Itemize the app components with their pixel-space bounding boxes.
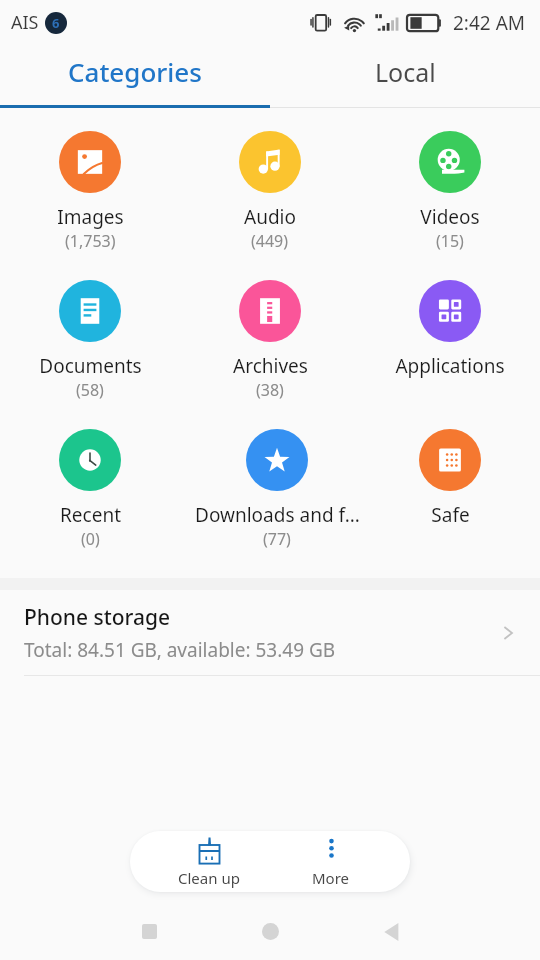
staticText: (58) — [76, 379, 104, 401]
staticText: 6 — [52, 14, 60, 32]
button[interactable]: Archives — [180, 267, 360, 416]
staticText: Recent — [60, 502, 121, 528]
staticText: Audio — [244, 204, 296, 230]
staticText: Downloads and f... — [195, 502, 360, 528]
staticText: Categories — [68, 54, 202, 89]
staticText: Safe — [431, 502, 470, 528]
button[interactable]: More options — [270, 831, 392, 892]
other: Open phone storage — [498, 623, 518, 643]
staticText: 2:42 AM — [453, 10, 526, 36]
button[interactable]: Safe — [360, 416, 540, 565]
staticText: (1,753) — [65, 230, 116, 252]
staticText: AIS — [11, 10, 39, 35]
staticText: Documents — [39, 353, 142, 379]
staticText: (38) — [256, 379, 284, 401]
button[interactable]: Recent — [0, 416, 180, 565]
staticText: Local — [375, 55, 436, 89]
staticText: Phone storage — [24, 603, 171, 632]
staticText: Applications — [395, 353, 505, 379]
button[interactable]: Home — [210, 903, 331, 960]
staticText: (0) — [81, 528, 100, 550]
button[interactable]: Audio — [180, 118, 360, 267]
button[interactable]: Local — [270, 45, 540, 108]
button[interactable]: Back — [331, 903, 452, 960]
button[interactable]: Documents — [0, 267, 180, 416]
button[interactable]: Recents — [88, 903, 210, 960]
button[interactable]: Categories — [0, 45, 270, 108]
button[interactable]: Images — [0, 118, 180, 267]
staticText: Videos — [420, 204, 480, 230]
staticText: Clean up — [178, 868, 240, 888]
staticText: (449) — [251, 230, 289, 252]
staticText: (15) — [436, 230, 464, 252]
staticText: Archives — [233, 353, 308, 379]
button[interactable]: Downloads and f... — [187, 416, 367, 565]
staticText: (77) — [263, 528, 291, 550]
button[interactable]: Videos — [360, 118, 540, 267]
staticText: More — [312, 868, 350, 888]
staticText: Total: 84.51 GB, available: 53.49 GB — [24, 637, 336, 663]
staticText: Images — [57, 204, 124, 230]
button[interactable]: Applications — [360, 267, 540, 416]
button[interactable]: Phone storage — [0, 590, 540, 676]
button[interactable]: Clean up — [148, 831, 270, 892]
